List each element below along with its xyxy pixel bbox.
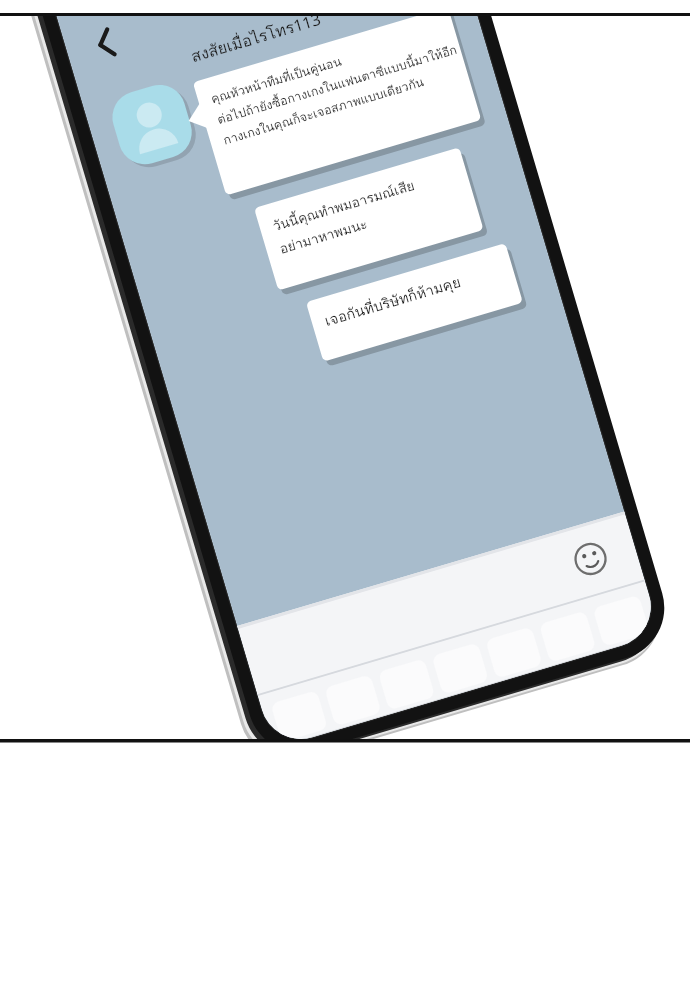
button[interactable]: Chat conversation on phone xyxy=(0,0,690,1000)
